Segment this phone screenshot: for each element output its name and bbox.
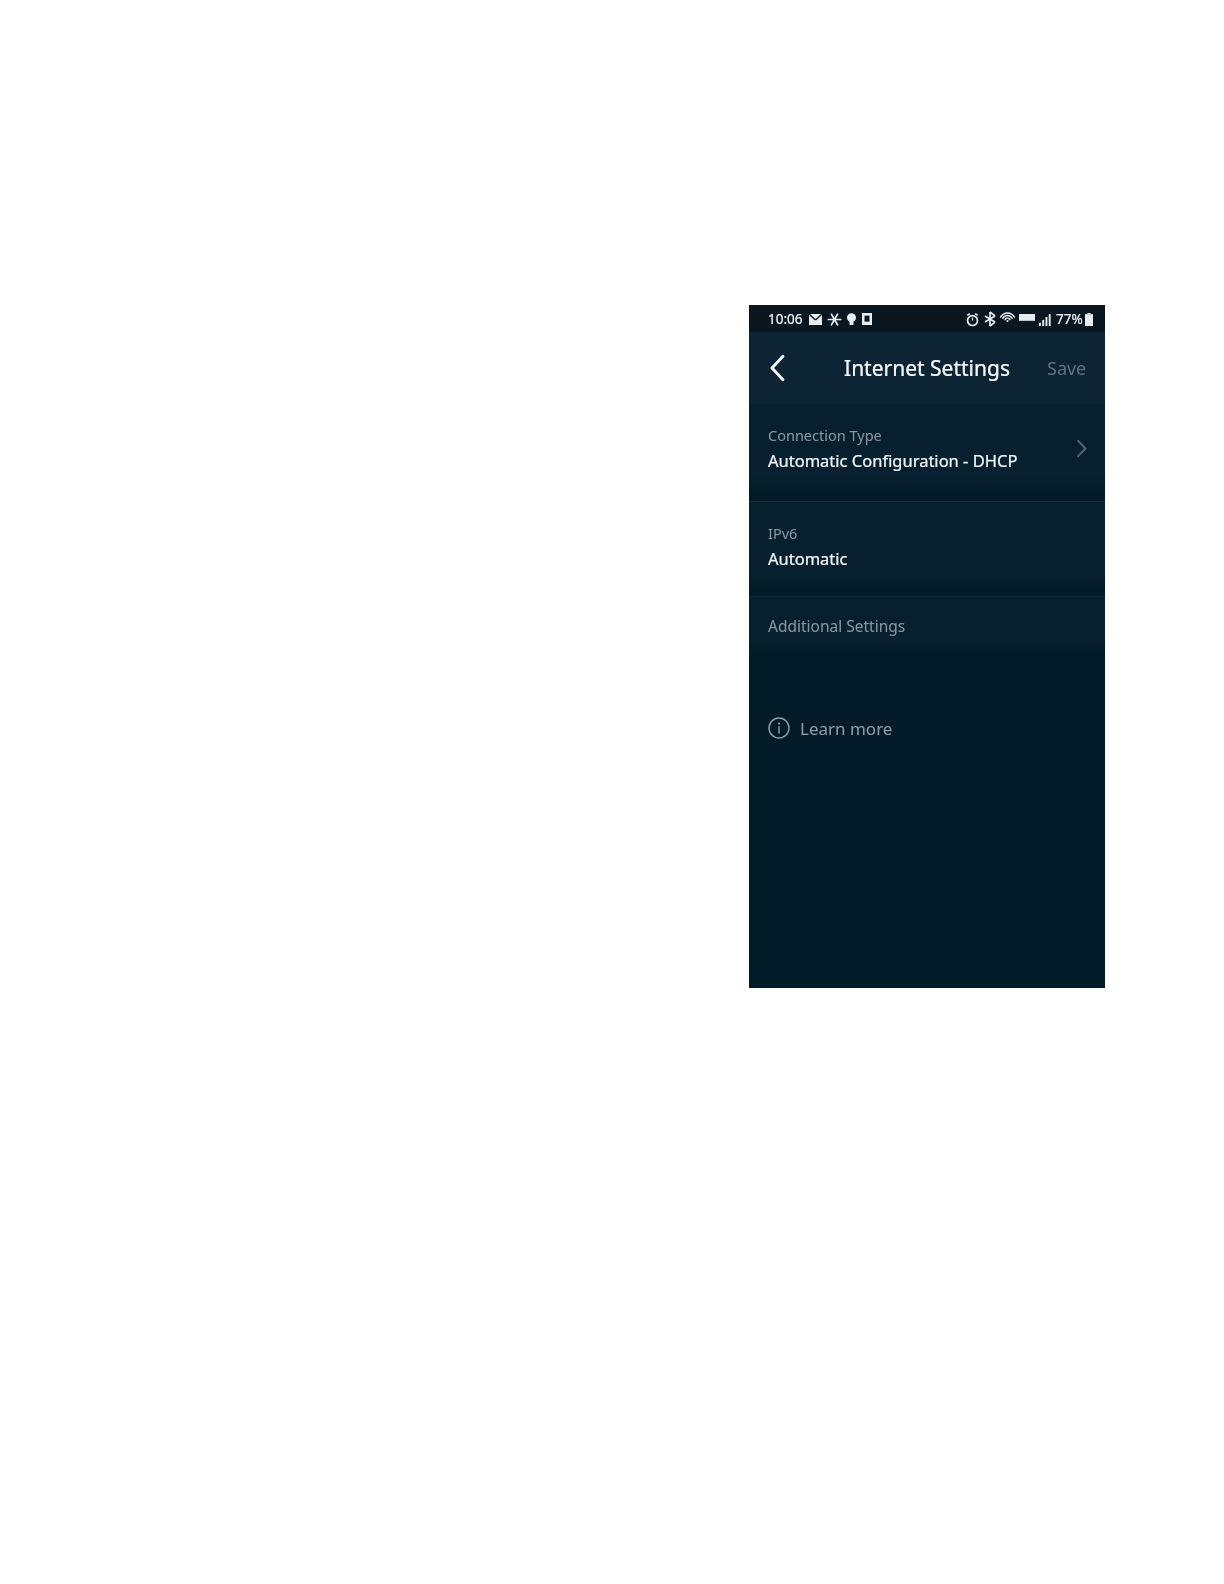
button[interactable]: Back bbox=[749, 332, 805, 404]
button[interactable]: Connection Type bbox=[749, 404, 1105, 492]
staticText: Additional Settings bbox=[768, 615, 906, 636]
staticText: 77% bbox=[1056, 310, 1083, 328]
staticText: Internet Settings bbox=[844, 354, 1010, 383]
button[interactable]: IPv6 bbox=[749, 502, 1105, 590]
staticText: 10:06 bbox=[768, 310, 803, 328]
staticText: Automatic bbox=[768, 547, 848, 569]
staticText: Automatic Configuration - DHCP bbox=[768, 449, 1018, 471]
button[interactable]: Additional Settings bbox=[749, 597, 1105, 653]
staticText: IPv6 bbox=[768, 523, 798, 543]
staticText: Learn more bbox=[800, 717, 893, 740]
button[interactable]: Learn more bbox=[768, 709, 893, 747]
staticText: Save bbox=[1047, 356, 1087, 381]
button[interactable]: Save bbox=[1029, 332, 1105, 404]
staticText: Connection Type bbox=[768, 425, 882, 445]
